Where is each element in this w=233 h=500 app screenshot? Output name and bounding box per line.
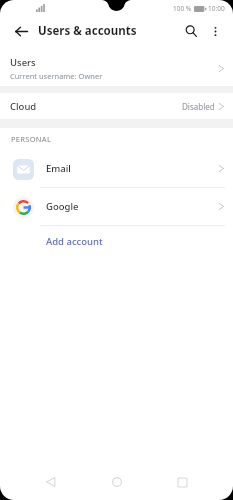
staticText: Disabled: [182, 101, 215, 112]
button[interactable]: Add account: [0, 226, 233, 256]
staticText: 100 %: [173, 4, 192, 13]
button[interactable]: More options: [203, 19, 227, 43]
button[interactable]: Home: [102, 467, 132, 497]
button[interactable]: Users: [0, 50, 233, 86]
button[interactable]: Search: [179, 19, 203, 43]
button[interactable]: Back: [8, 18, 34, 44]
button[interactable]: Email: [0, 150, 233, 187]
staticText: Add account: [46, 235, 103, 248]
staticText: Cloud: [10, 100, 182, 113]
staticText: Users & accounts: [38, 23, 137, 39]
button[interactable]: Back: [36, 467, 66, 497]
staticText: 10:00: [208, 4, 225, 13]
staticText: Users: [10, 56, 36, 69]
button[interactable]: Cloud: [0, 93, 233, 119]
staticText: PERSONAL: [11, 134, 52, 144]
button[interactable]: Recent apps: [167, 467, 197, 497]
button[interactable]: Google: [0, 188, 233, 225]
staticText: Email: [46, 162, 218, 175]
staticText: Google: [46, 200, 218, 213]
staticText: Current username: Owner: [10, 71, 103, 81]
